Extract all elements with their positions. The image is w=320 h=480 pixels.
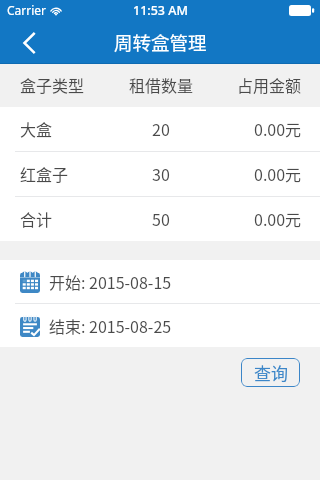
button[interactable]: 查询 — [241, 358, 300, 387]
staticText: 合计 — [20, 207, 53, 230]
button[interactable]: 结束: 2015-08-25 — [0, 304, 320, 347]
staticText: 0.00元 — [254, 207, 302, 230]
staticText: 租借数量 — [129, 73, 194, 96]
staticText: 30 — [152, 162, 170, 185]
staticText: 50 — [152, 207, 170, 230]
staticText: 查询 — [254, 360, 288, 385]
button[interactable]: Back — [0, 20, 48, 64]
staticText: 结束: 2015-08-25 — [49, 314, 172, 337]
staticText: 盒子类型 — [20, 73, 85, 96]
staticText: Carrier — [7, 2, 47, 18]
staticText: 红盒子 — [20, 162, 69, 185]
button[interactable]: 大盒 — [0, 107, 320, 151]
staticText: 开始: 2015-08-15 — [49, 270, 172, 293]
staticText: 0.00元 — [254, 162, 302, 185]
button[interactable]: 开始: 2015-08-15 — [0, 260, 320, 303]
staticText: 0.00元 — [254, 117, 302, 140]
staticText: 大盒 — [20, 117, 53, 140]
button[interactable]: 合计 — [0, 197, 320, 241]
staticText: 11:53 AM — [133, 2, 188, 19]
staticText: 占用金额 — [237, 73, 302, 96]
button[interactable]: 红盒子 — [0, 152, 320, 196]
staticText: 20 — [152, 117, 170, 140]
staticText: 周转盒管理 — [114, 29, 207, 56]
